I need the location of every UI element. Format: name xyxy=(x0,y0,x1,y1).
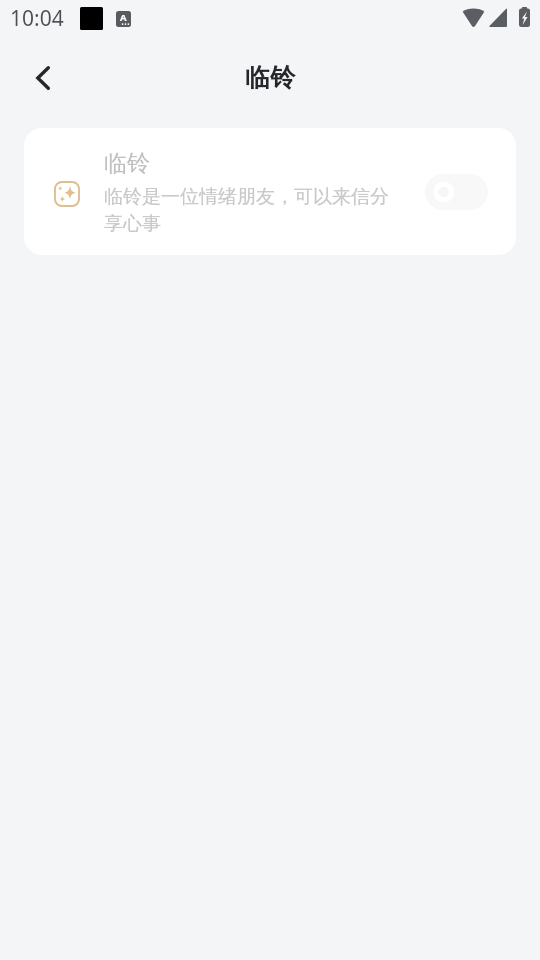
staticText: 临铃 xyxy=(245,62,295,93)
staticText: 临铃是一位情绪朋友，可以来信分享心事 xyxy=(104,185,394,236)
button[interactable]: 临铃 xyxy=(24,128,516,255)
staticText: 10:04 xyxy=(10,4,64,33)
button[interactable]: Back xyxy=(19,54,67,102)
staticText: 临铃 xyxy=(104,149,150,178)
staticText: A xyxy=(120,11,127,24)
